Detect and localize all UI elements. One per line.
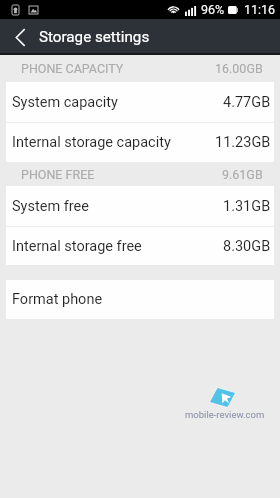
staticText: Internal storage capacity — [12, 134, 171, 151]
staticText: 9.61GB — [222, 167, 263, 182]
button[interactable]: Format phone — [6, 280, 274, 319]
staticText: Storage settings — [39, 28, 150, 46]
staticText: 11:16 — [244, 2, 276, 17]
button[interactable]: System free — [6, 186, 274, 226]
button[interactable]: Back — [0, 19, 39, 55]
staticText: Format phone — [12, 291, 103, 308]
staticText: 11.23GB — [215, 134, 271, 151]
staticText: 1.31GB — [223, 198, 271, 215]
button[interactable]: Internal storage capacity — [6, 123, 274, 162]
staticText: PHONE FREE — [21, 167, 95, 182]
staticText: 96% — [201, 2, 225, 17]
button[interactable]: Internal storage free — [6, 227, 274, 265]
staticText: 16.00GB — [215, 61, 263, 76]
button[interactable]: System capacity — [6, 82, 274, 122]
staticText: System free — [12, 198, 89, 215]
staticText: 8.30GB — [223, 238, 271, 255]
staticText: PHONE CAPACITY — [21, 61, 124, 76]
staticText: System capacity — [12, 94, 118, 111]
staticText: Internal storage free — [12, 238, 142, 255]
staticText: 4.77GB — [223, 94, 271, 111]
staticText: mobile-review.com — [185, 409, 265, 420]
